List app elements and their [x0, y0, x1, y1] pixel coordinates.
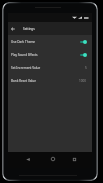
staticText: Play Sound Effects: [11, 53, 38, 57]
staticText: 5: [85, 66, 87, 70]
button[interactable]: Back: [20, 152, 35, 168]
button[interactable]: Set Increment Value: [8, 61, 92, 74]
button[interactable]: Bank Reset Value: [8, 74, 92, 87]
staticText: Settings: [23, 27, 35, 31]
staticText: Bank Reset Value: [11, 79, 36, 83]
staticText: 1000: [79, 79, 87, 83]
staticText: Set Increment Value: [11, 66, 41, 70]
button[interactable]: Navigate up: [8, 24, 18, 34]
button[interactable]: Play Sound Effects: [8, 48, 92, 61]
button[interactable]: Recent apps: [67, 152, 82, 168]
button[interactable]: Use Dark Theme: [8, 35, 92, 48]
staticText: Use Dark Theme: [11, 40, 36, 44]
button[interactable]: Home: [45, 152, 60, 168]
